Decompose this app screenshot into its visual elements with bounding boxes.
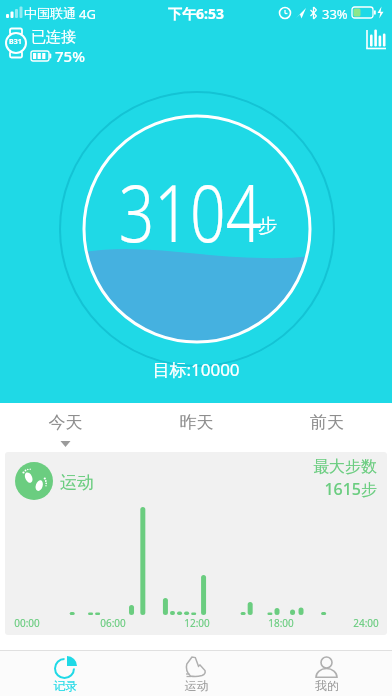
button[interactable]: 记录 [0,651,131,696]
staticText: 24:00 [346,616,386,630]
staticText: 06:00 [93,616,133,630]
staticText: 昨天 [131,412,262,433]
staticText: 下午6:53 [0,4,392,23]
staticText: 中国联通 [24,5,76,21]
staticText: 3104 [37,156,343,265]
button[interactable]: 前天 [262,403,392,452]
button[interactable]: 我的 [262,651,392,696]
staticText: 记录 [0,678,131,693]
staticText: 00:00 [7,616,47,630]
staticText: 我的 [262,678,392,693]
button[interactable]: 运动 [5,452,387,635]
button[interactable]: 今天 [0,403,131,452]
staticText: 已连接 [31,28,76,47]
button[interactable]: 运动 [131,651,262,696]
staticText: 运动 [131,678,262,693]
staticText: 12:00 [177,616,217,630]
button[interactable]: 昨天 [131,403,262,452]
staticText: 最大步数 [267,457,377,477]
staticText: 前天 [262,412,392,433]
staticText: 33% [322,5,348,23]
staticText: 4G [79,5,96,23]
staticText: 目标:10000 [0,358,392,381]
staticText: 75% [55,46,85,66]
staticText: 今天 [0,412,131,433]
staticText: 18:00 [261,616,301,630]
staticText: 步 [258,214,277,238]
staticText: 运动 [60,472,94,493]
staticText: B31 [9,37,22,47]
staticText: 1615步 [267,478,377,500]
